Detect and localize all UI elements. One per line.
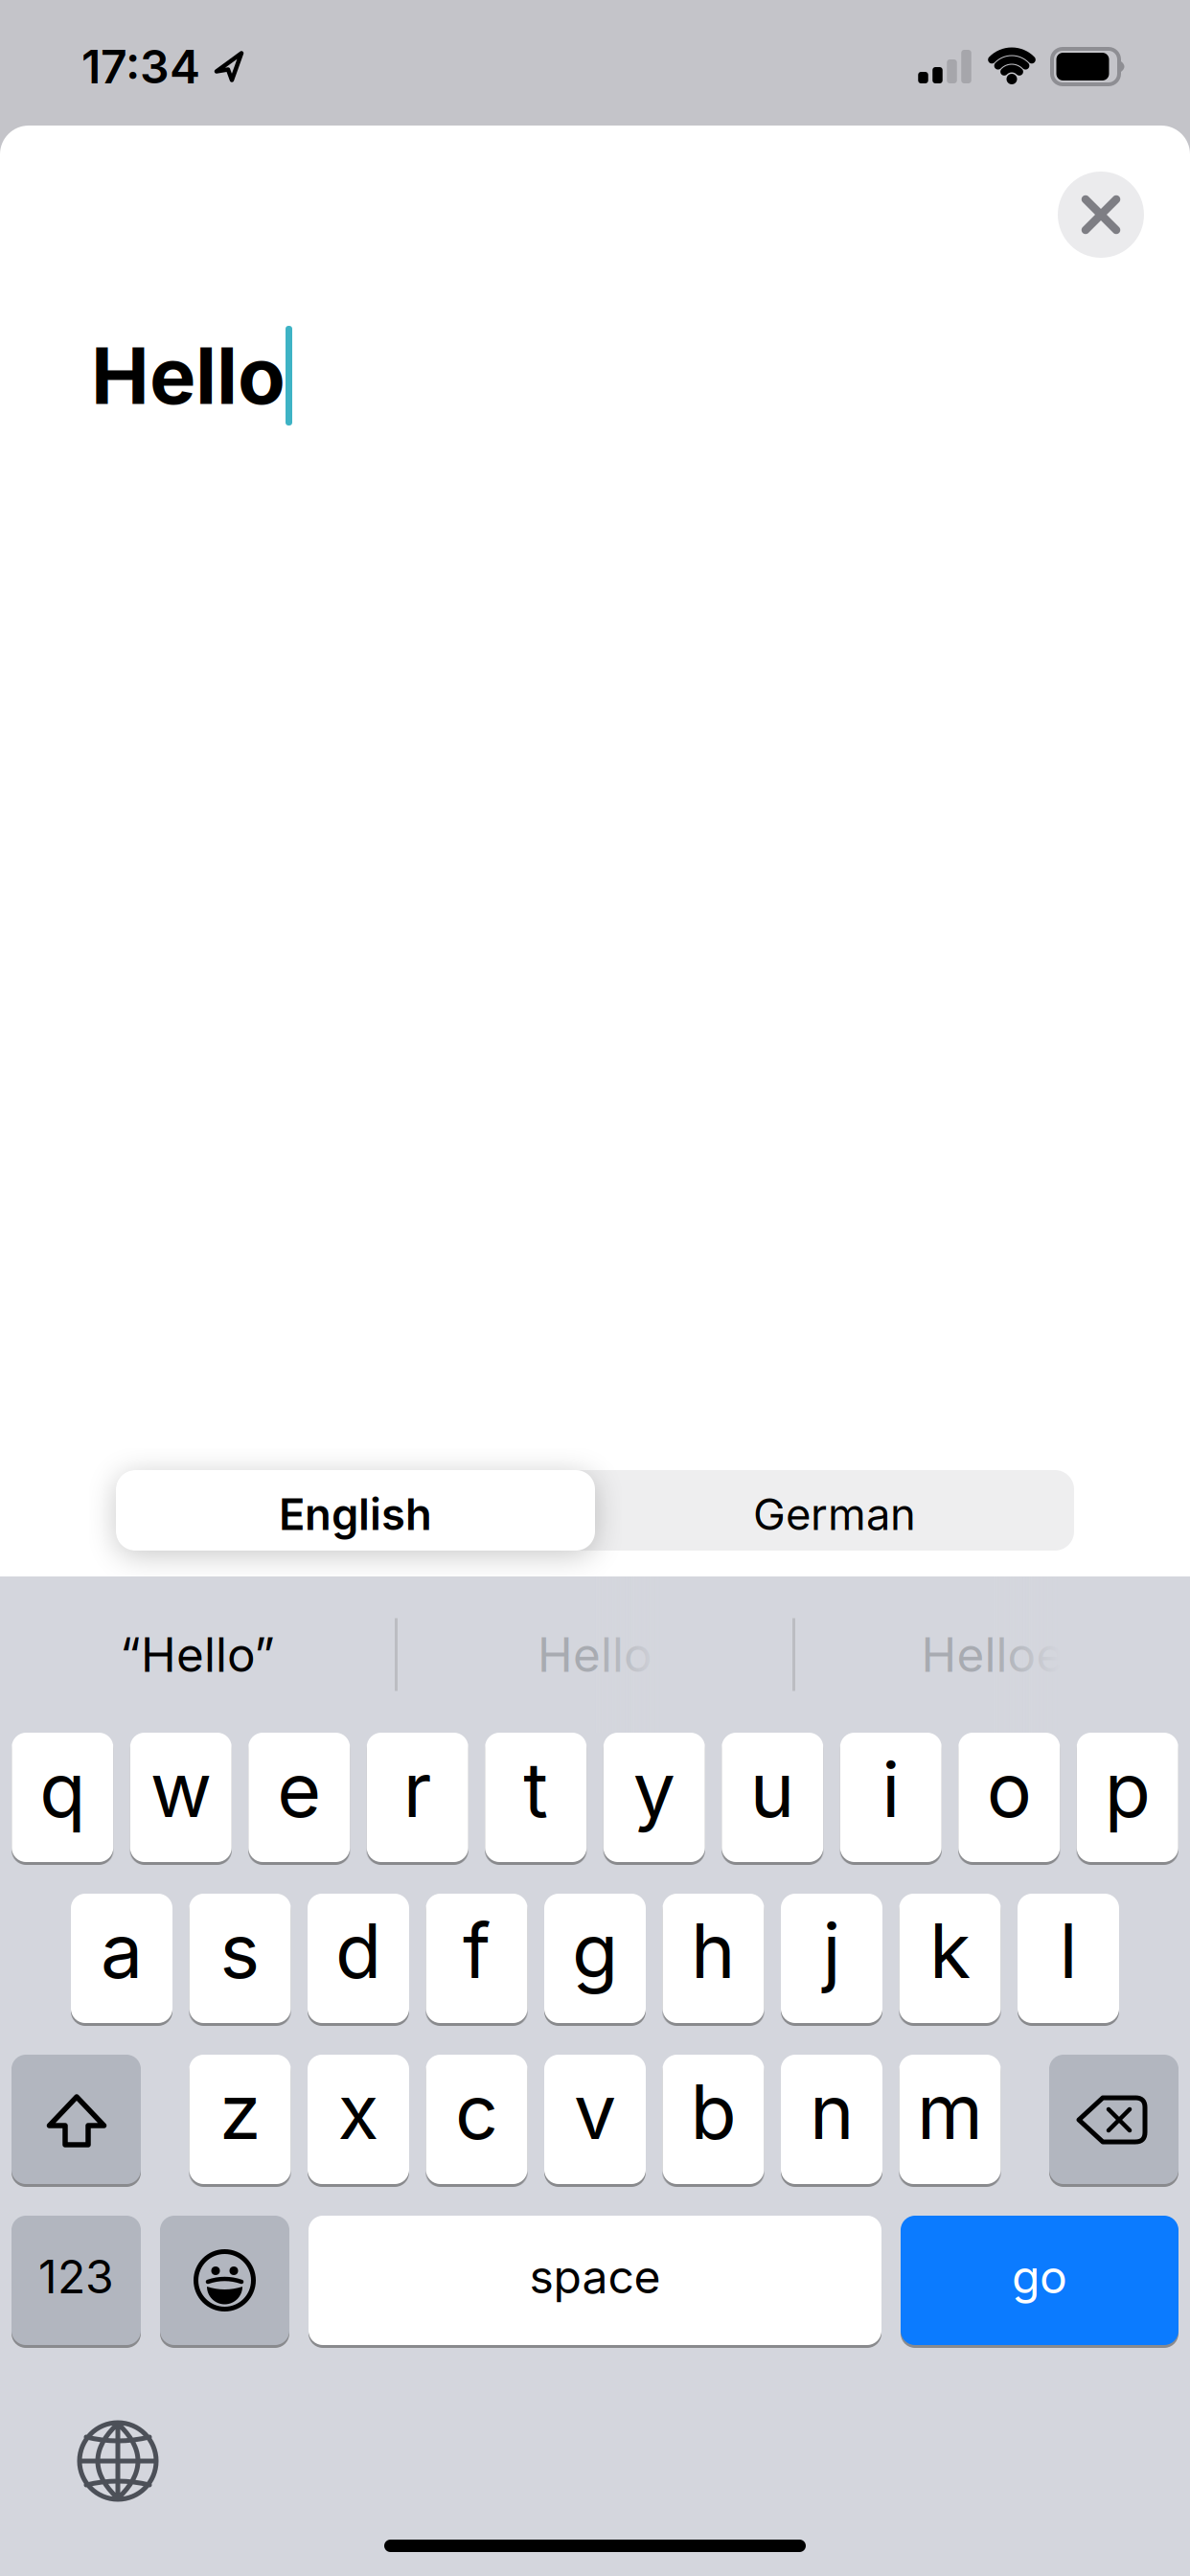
staticText: v [574,2067,616,2156]
button[interactable]: j [781,1894,882,2023]
button[interactable] [76,2419,160,2503]
staticText: German [753,1489,916,1540]
button[interactable] [11,2055,141,2184]
button[interactable]: w [130,1733,232,1862]
button[interactable]: d [308,1894,409,2023]
button[interactable]: 123 [11,2216,141,2345]
button[interactable]: h [663,1894,764,2023]
button[interactable] [1058,172,1144,258]
button[interactable]: German [595,1470,1074,1551]
button[interactable]: “Hello” [0,1576,395,1733]
staticText: y [633,1745,675,1834]
button[interactable] [1049,2055,1179,2184]
button[interactable]: m [899,2055,1001,2184]
staticText: Helloe [921,1627,1064,1682]
button[interactable]: b [663,2055,764,2184]
button[interactable]: v [544,2055,646,2184]
button[interactable]: l [1018,1894,1119,2023]
staticText: f [463,1906,491,1995]
button[interactable]: o [958,1733,1060,1862]
button[interactable]: English [116,1470,595,1551]
button[interactable]: u [722,1733,823,1862]
staticText: u [750,1745,795,1834]
staticText: l [1059,1906,1077,1995]
button[interactable]: p [1077,1733,1178,1862]
button[interactable]: k [899,1894,1001,2023]
button[interactable]: c [426,2055,527,2184]
button[interactable]: y [603,1733,705,1862]
staticText: Hello [91,330,286,422]
staticText: z [219,2067,261,2156]
button[interactable] [160,2216,289,2345]
staticText: m [917,2067,983,2156]
button[interactable]: r [367,1733,468,1862]
staticText: d [335,1906,381,1995]
button[interactable]: Helloe [795,1576,1190,1733]
staticText: i [882,1745,900,1834]
staticText: 123 [38,2249,114,2304]
staticText: o [987,1745,1032,1834]
button[interactable]: space [309,2216,881,2345]
staticText: p [1105,1745,1151,1834]
staticText: 17:34 [81,39,200,94]
staticText: c [455,2067,498,2156]
button[interactable]: t [485,1733,587,1862]
staticText: a [101,1906,143,1995]
button[interactable]: i [840,1733,942,1862]
staticText: go [1012,2249,1067,2304]
button[interactable]: Hello [398,1576,792,1733]
staticText: “Hello” [120,1627,275,1682]
staticText: t [523,1745,548,1834]
staticText: g [572,1906,618,1995]
staticText: x [338,2067,379,2156]
button[interactable]: s [189,1894,291,2023]
staticText: e [277,1745,321,1834]
staticText: s [220,1906,260,1995]
staticText: n [810,2067,854,2156]
button[interactable]: f [426,1894,527,2023]
staticText: English [279,1489,432,1540]
button[interactable]: e [248,1733,350,1862]
staticText: q [39,1745,85,1834]
button[interactable]: go [901,2216,1179,2345]
button[interactable]: x [308,2055,409,2184]
staticText: b [690,2067,736,2156]
button[interactable]: g [544,1894,646,2023]
button[interactable]: n [781,2055,882,2184]
staticText: j [823,1906,841,1995]
staticText: space [529,2249,661,2304]
button[interactable]: q [12,1733,113,1862]
staticText: r [403,1745,432,1834]
staticText: Hello [538,1627,652,1682]
staticText: w [150,1745,212,1834]
button[interactable]: z [189,2055,291,2184]
staticText: h [691,1906,736,1995]
button[interactable]: a [71,1894,172,2023]
staticText: k [929,1906,971,1995]
